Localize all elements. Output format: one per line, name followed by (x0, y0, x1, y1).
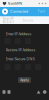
staticText: Enter IP Address (5, 32, 31, 36)
button[interactable]: Minimise (38, 3, 40, 4)
staticText: Apply (20, 78, 29, 82)
button[interactable]: Settings (7, 90, 10, 94)
staticText: Enter Secure DNS (5, 57, 34, 61)
staticText: Your IP 10.0.0.1 (2, 17, 13, 24)
staticText: Secure (22, 19, 33, 22)
button[interactable]: Profile (43, 90, 46, 94)
button[interactable]: Account (2, 90, 5, 94)
staticText: Restore IP Address (5, 48, 35, 52)
button[interactable]: Alerts (37, 90, 40, 94)
staticText: Fast (38, 10, 45, 13)
button[interactable]: Apply (18, 77, 31, 83)
staticText: Connected (10, 9, 28, 14)
staticText: NordVPN (7, 1, 22, 6)
